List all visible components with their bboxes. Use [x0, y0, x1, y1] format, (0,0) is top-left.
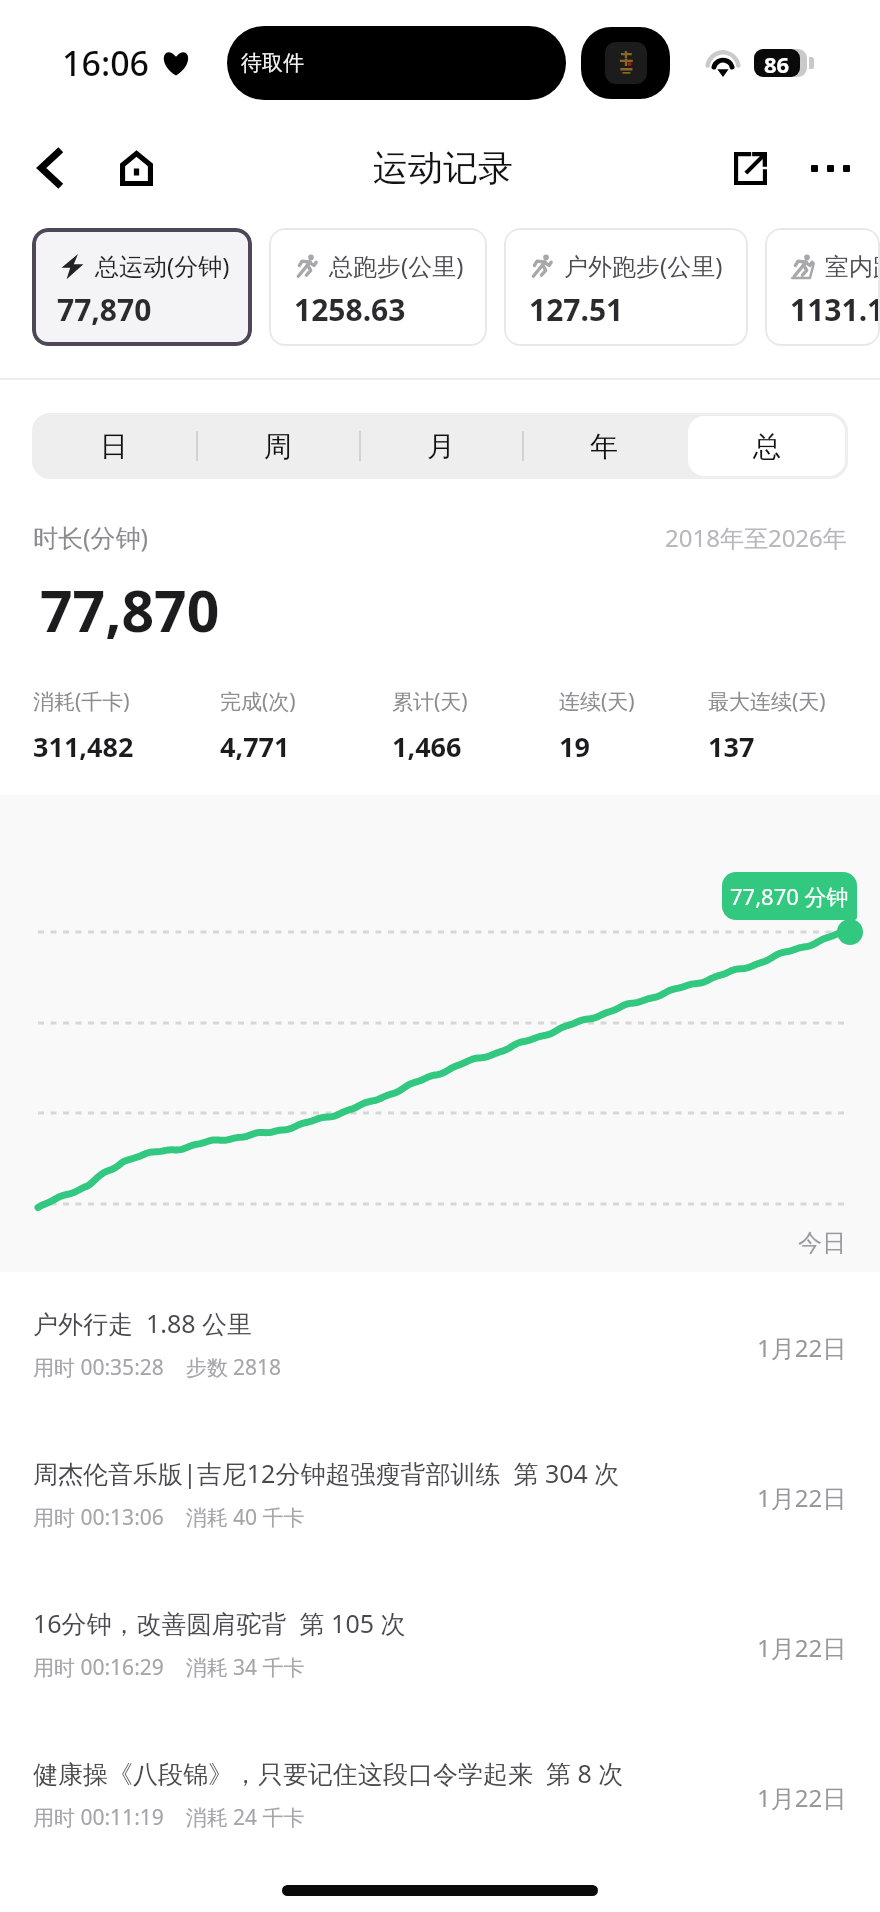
button[interactable]: Share: [722, 140, 778, 196]
staticText: 周杰伦音乐版|吉尼12分钟超强瘦背部训练 第 304 次: [33, 1456, 620, 1490]
staticText: 周: [264, 429, 292, 464]
staticText: 1,466: [392, 728, 462, 765]
button[interactable]: 健康操《八段锦》，只要记住这段口令学起来 第 8 次: [0, 1722, 880, 1872]
staticText: 今日: [798, 1228, 846, 1258]
staticText: 77,870: [40, 571, 220, 649]
staticText: 127.51: [529, 289, 624, 330]
staticText: 健康操《八段锦》，只要记住这段口令学起来 第 8 次: [33, 1756, 624, 1790]
staticText: 月: [427, 429, 455, 464]
staticText: 77,870: [57, 289, 152, 330]
button[interactable]: 室内跑步(公里): [765, 228, 880, 346]
staticText: 总运动(分钟): [95, 249, 230, 282]
button[interactable]: 周: [196, 413, 359, 479]
button[interactable]: 日: [32, 413, 196, 479]
staticText: 日: [100, 429, 128, 464]
button[interactable]: Back: [21, 140, 77, 196]
staticText: 运动记录: [373, 146, 513, 190]
button[interactable]: 周杰伦音乐版|吉尼12分钟超强瘦背部训练 第 304 次: [0, 1422, 880, 1572]
staticText: 1月22日: [757, 1631, 847, 1664]
staticText: 86: [764, 49, 790, 77]
button[interactable]: 户外跑步(公里): [504, 228, 748, 346]
staticText: 19: [559, 728, 590, 765]
staticText: 1258.63: [294, 289, 406, 330]
staticText: 消耗(千卡): [33, 687, 130, 716]
button[interactable]: 总: [688, 416, 845, 476]
staticText: 时长(分钟): [33, 520, 149, 554]
staticText: 完成(次): [220, 687, 296, 716]
staticText: 总跑步(公里): [329, 249, 464, 282]
staticText: 311,482: [33, 728, 134, 765]
button[interactable]: 户外行走 1.88 公里: [0, 1272, 880, 1422]
button[interactable]: 总跑步(公里): [269, 228, 487, 346]
staticText: 2018年至2026年: [665, 521, 847, 554]
staticText: 16分钟，改善圆肩驼背 第 105 次: [33, 1606, 406, 1640]
button[interactable]: 年: [522, 413, 685, 479]
staticText: 累计(天): [392, 687, 468, 716]
staticText: 用时 00:35:28 步数 2818: [33, 1353, 282, 1382]
staticText: 1月22日: [757, 1481, 847, 1514]
staticText: 户外行走 1.88 公里: [33, 1306, 253, 1340]
staticText: 137: [708, 728, 755, 765]
staticText: 年: [590, 429, 618, 464]
staticText: 16:06: [62, 40, 150, 86]
button[interactable]: More options: [802, 140, 858, 196]
staticText: 户外跑步(公里): [564, 249, 723, 282]
staticText: 1131.11: [790, 289, 880, 330]
staticText: 4,771: [220, 728, 290, 765]
button[interactable]: Home: [108, 140, 164, 196]
staticText: 总: [753, 429, 781, 464]
staticText: 用时 00:13:06 消耗 40 千卡: [33, 1503, 305, 1532]
staticText: 用时 00:16:29 消耗 34 千卡: [33, 1653, 305, 1682]
staticText: 连续(天): [559, 687, 635, 716]
staticText: 室内跑步(公里): [825, 249, 880, 282]
button[interactable]: 16分钟，改善圆肩驼背 第 105 次: [0, 1572, 880, 1722]
staticText: 77,870 分钟: [730, 881, 849, 911]
staticText: 1月22日: [757, 1331, 847, 1364]
staticText: 用时 00:11:19 消耗 24 千卡: [33, 1803, 305, 1832]
button[interactable]: 总运动(分钟): [32, 228, 252, 346]
staticText: 待取件: [241, 50, 304, 76]
button[interactable]: 月: [359, 413, 522, 479]
staticText: 最大连续(天): [708, 687, 826, 716]
staticText: 1月22日: [757, 1781, 847, 1814]
